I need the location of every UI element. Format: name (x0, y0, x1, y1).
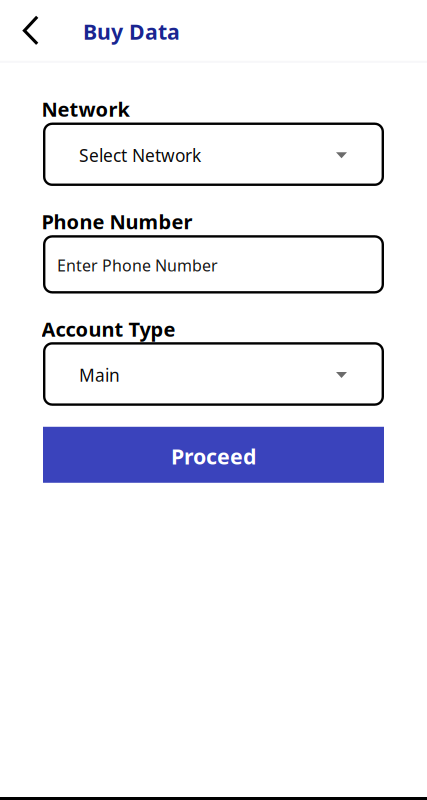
staticText: Buy Data (83, 17, 180, 46)
button[interactable]: Main (43, 342, 384, 406)
staticText: Proceed (171, 442, 256, 470)
button[interactable]: Select Network (43, 123, 384, 186)
button[interactable]: Proceed (43, 427, 384, 483)
staticText: Enter Phone Number (57, 255, 218, 276)
staticText: Network (41, 96, 129, 122)
button[interactable]: Back (0, 0, 57, 63)
button[interactable]: Enter Phone Number (43, 235, 384, 293)
staticText: Select Network (79, 144, 201, 167)
staticText: Account Type (41, 316, 175, 342)
staticText: Phone Number (41, 208, 192, 235)
staticText: Main (79, 363, 120, 386)
